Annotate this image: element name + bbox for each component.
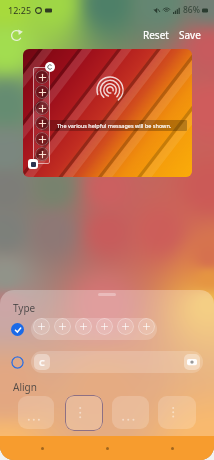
button[interactable]: Align option 2 [65,395,103,431]
staticText: Type [13,301,36,315]
staticText: The various helpful messages will be sho… [57,122,172,129]
staticText: 12:25 [8,4,32,16]
button[interactable]: Add stamp [96,318,113,335]
button[interactable]: Back [149,436,195,460]
button[interactable]: Add stamp [117,318,134,335]
button[interactable]: Add stamp [54,318,71,335]
button[interactable]: Add stamp [75,318,92,335]
button[interactable]: Not selected [0,351,214,373]
button[interactable]: Add stamp [33,318,50,335]
staticText: Reset [143,28,169,42]
staticText: 86% [183,4,200,16]
button[interactable]: Revert [5,24,27,46]
button[interactable]: Selected [0,318,214,340]
button[interactable]: Selected [11,323,24,336]
button[interactable]: Recents [19,436,65,460]
button[interactable]: Resize [28,159,38,169]
button[interactable]: Align option 3 [112,396,149,429]
button[interactable]: Sticker [34,354,50,370]
button[interactable]: Add stamp [138,318,155,335]
staticText: Save [179,28,201,42]
button[interactable]: Gallery [184,354,200,370]
staticText: C [39,356,45,368]
button[interactable]: Align option 1 [18,396,54,429]
button[interactable]: Not selected [11,356,24,369]
button[interactable]: Rotate [45,62,55,72]
staticText: Align [13,380,37,394]
button[interactable]: Save [176,25,204,45]
button[interactable]: Reset [140,25,172,45]
button[interactable]: Widget [33,67,50,164]
button[interactable]: Home [84,436,130,460]
button[interactable]: Align option 4 [158,396,196,429]
